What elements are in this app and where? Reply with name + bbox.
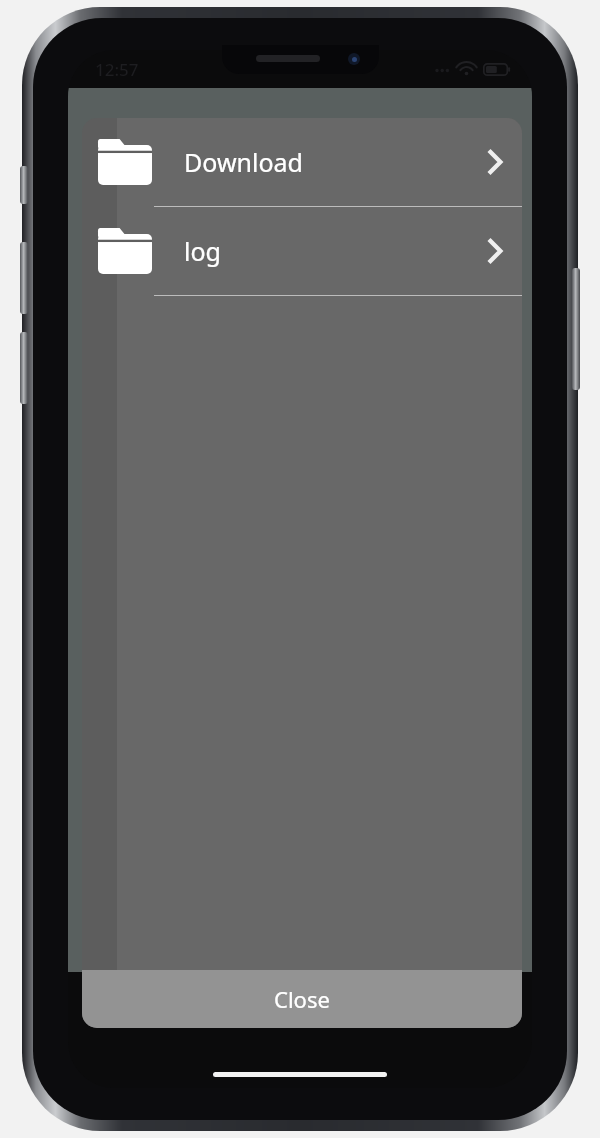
button[interactable]: Download [82, 118, 522, 206]
staticText: log [184, 234, 221, 268]
staticText: Download [184, 145, 303, 179]
other: Open Download [486, 147, 504, 177]
staticText: 12:57 [95, 58, 139, 81]
staticText: Close [274, 984, 330, 1014]
button[interactable]: log [82, 207, 522, 295]
other: Open log [486, 236, 504, 266]
button[interactable]: Close [82, 970, 522, 1028]
